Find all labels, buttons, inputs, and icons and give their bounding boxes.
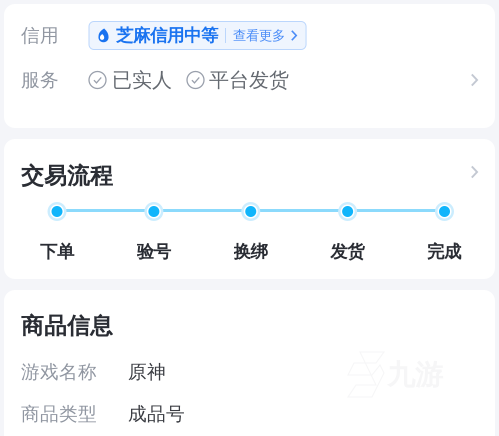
staticText: 游戏名称 [21,360,97,383]
staticText: 芝麻信用中等 [116,25,218,46]
staticText: 验号 [137,241,171,262]
staticText: 成品号 [128,402,185,425]
staticText: 九游 [387,358,443,392]
staticText: 完成 [427,241,461,262]
staticText: 下单 [40,241,74,262]
staticText: 查看更多 [233,27,285,44]
staticText: 服务 [21,68,59,91]
staticText: 商品信息 [21,312,113,340]
button[interactable]: 服务 [21,58,478,102]
staticText: 平台发货 [209,68,289,92]
staticText: 发货 [330,241,364,262]
button[interactable]: 交易流程 [4,156,495,196]
button[interactable]: 芝麻信用中等 [89,21,306,49]
staticText: 已实人 [112,68,172,92]
staticText: 交易流程 [21,162,113,190]
staticText: 商品类型 [21,402,97,425]
staticText: 原神 [128,360,166,383]
staticText: 信用 [21,24,59,47]
staticText: 换绑 [233,241,267,262]
